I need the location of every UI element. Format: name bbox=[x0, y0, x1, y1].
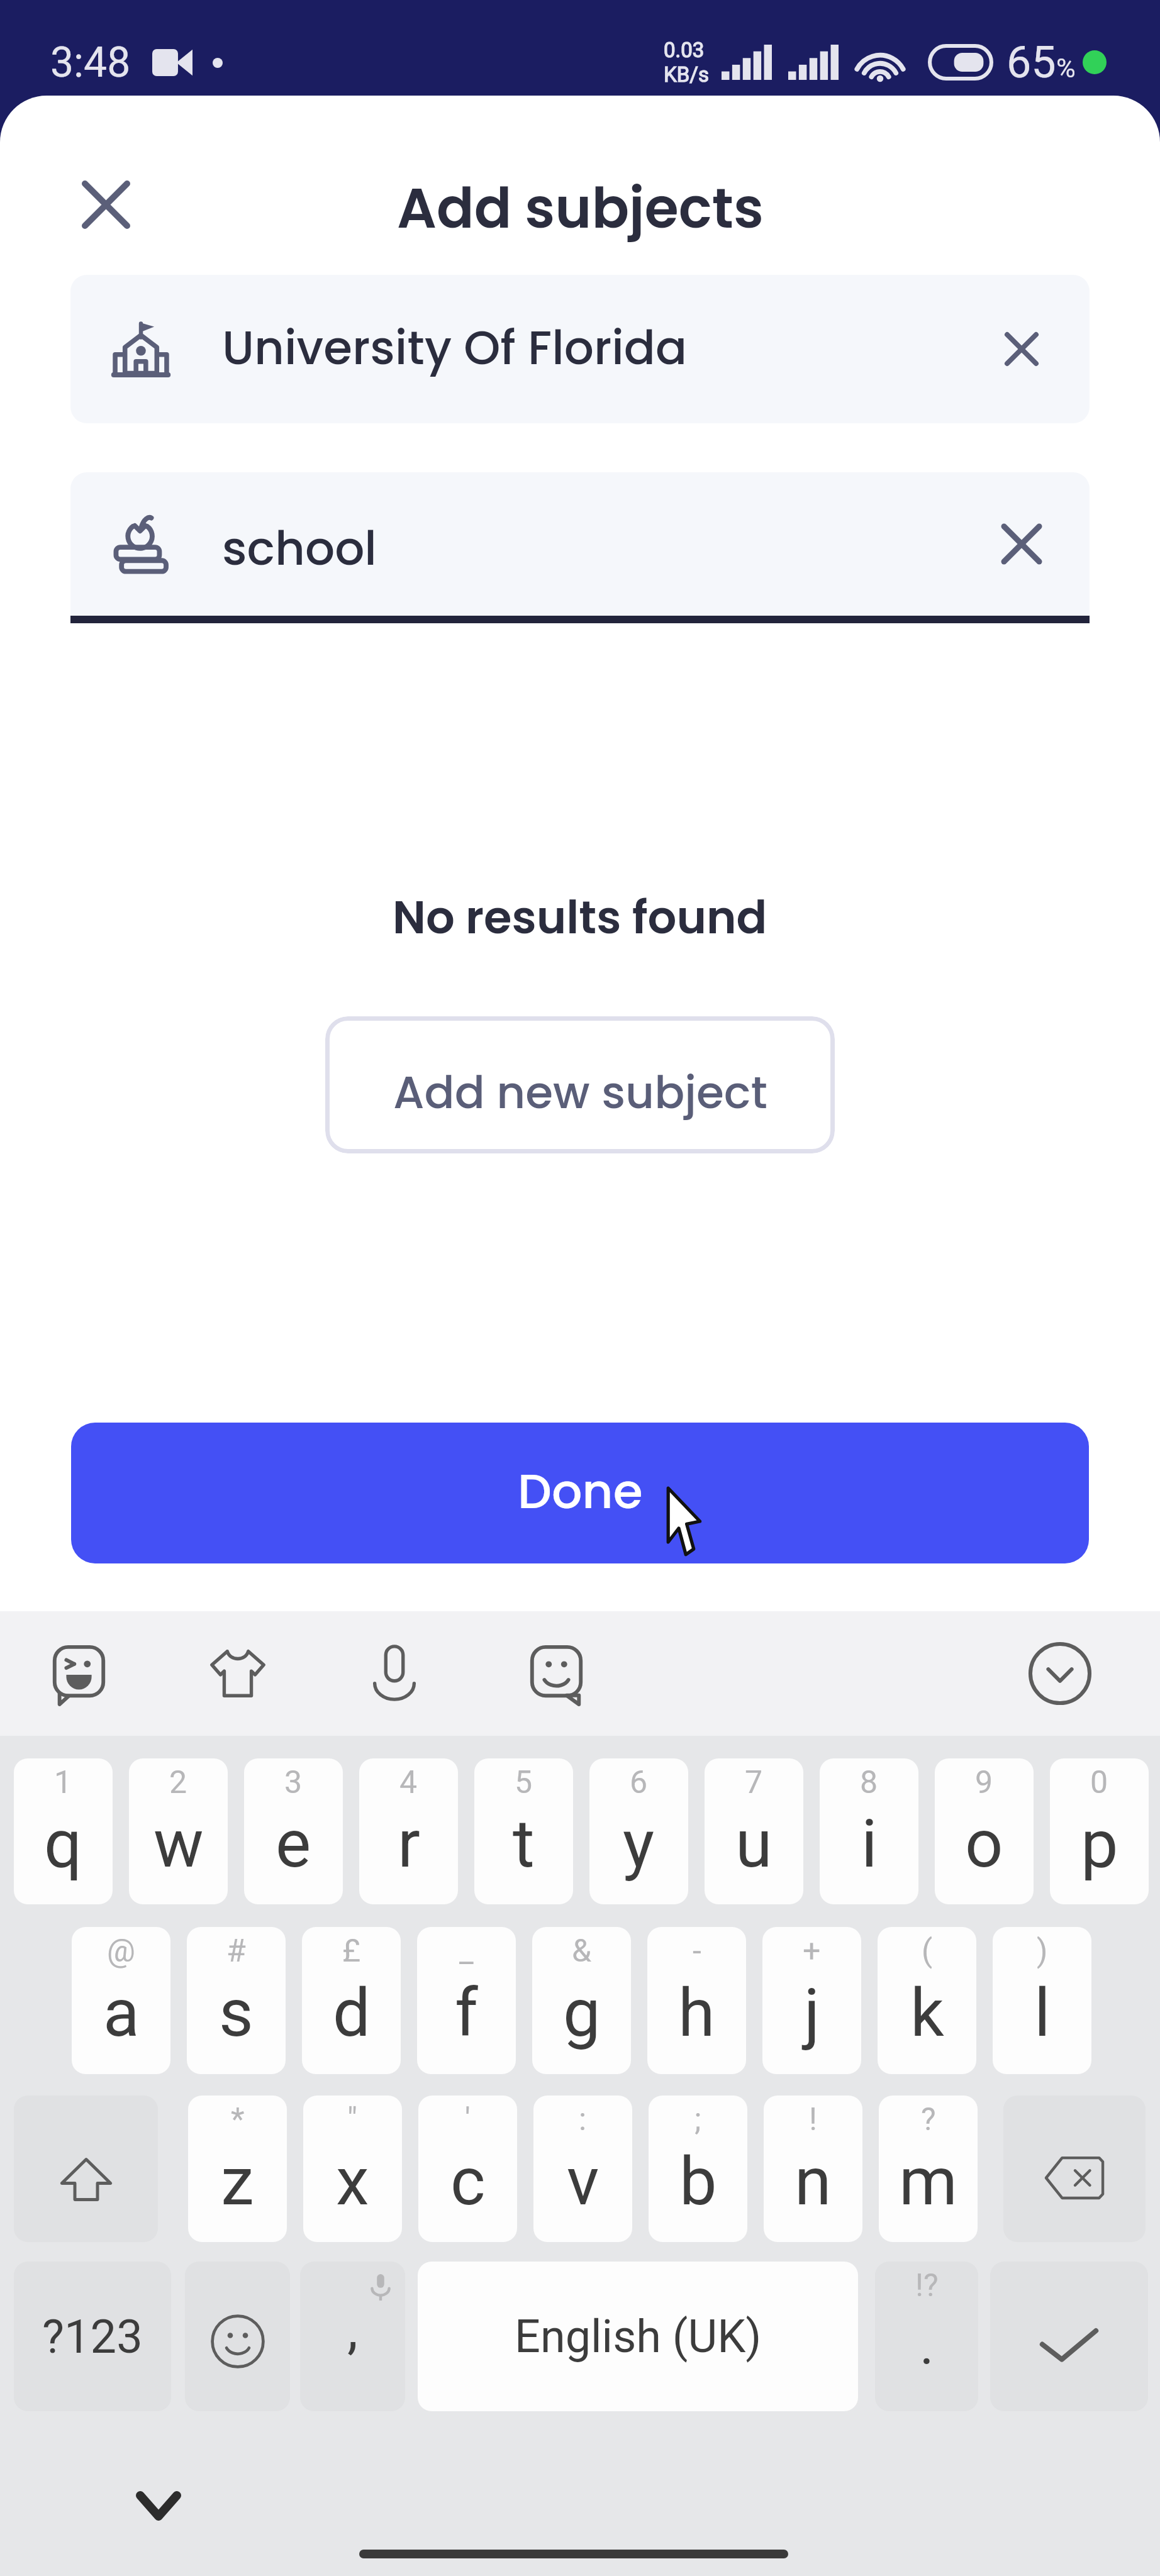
staticText: ; bbox=[694, 2101, 701, 2138]
staticText: @ bbox=[107, 1933, 135, 1970]
button[interactable]: Themes bbox=[203, 1639, 272, 1708]
button[interactable]: !? bbox=[875, 2262, 978, 2411]
staticText: o bbox=[965, 1805, 1003, 1883]
button[interactable]: @ bbox=[72, 1927, 170, 2074]
button[interactable]: school bbox=[70, 472, 1090, 616]
staticText: s bbox=[219, 1974, 254, 2052]
button[interactable]: 0 bbox=[1050, 1758, 1149, 1904]
button[interactable]: ?123 bbox=[14, 2262, 171, 2411]
staticText: x bbox=[336, 2143, 369, 2221]
button[interactable]: : bbox=[533, 2096, 632, 2242]
button[interactable]: Backspace bbox=[1003, 2096, 1146, 2242]
button[interactable]: 9 bbox=[935, 1758, 1034, 1904]
button[interactable]: 3 bbox=[244, 1758, 343, 1904]
button[interactable]: Emoji bbox=[522, 1639, 591, 1708]
staticText: ) bbox=[1037, 1933, 1048, 1970]
staticText: ! bbox=[809, 2101, 817, 2138]
staticText: !? bbox=[915, 2267, 939, 2304]
staticText: 3:48 bbox=[50, 38, 131, 87]
button[interactable]: Voice input bbox=[360, 1639, 429, 1708]
staticText: school bbox=[222, 516, 377, 581]
button[interactable]: * bbox=[188, 2096, 287, 2242]
button[interactable]: £ bbox=[302, 1927, 401, 2074]
button[interactable]: Remove subject bbox=[993, 320, 1051, 378]
button[interactable]: ! bbox=[764, 2096, 862, 2242]
staticText: z bbox=[221, 2143, 254, 2221]
staticText: ' bbox=[465, 2101, 471, 2138]
button[interactable]: 6 bbox=[589, 1758, 688, 1904]
staticText: b bbox=[679, 2143, 717, 2221]
staticText: Done bbox=[518, 1458, 643, 1524]
other: Enter bbox=[1039, 2318, 1100, 2355]
button[interactable]: ; bbox=[649, 2096, 747, 2242]
staticText: f bbox=[455, 1974, 478, 2052]
staticText: l bbox=[1034, 1974, 1051, 2052]
button[interactable]: & bbox=[532, 1927, 631, 2074]
staticText: ?123 bbox=[42, 2309, 143, 2364]
button[interactable]: Close bbox=[68, 167, 143, 242]
button[interactable]: 4 bbox=[359, 1758, 458, 1904]
button[interactable]: Enter bbox=[990, 2262, 1148, 2411]
staticText: p bbox=[1081, 1805, 1118, 1883]
staticText: 4 bbox=[399, 1764, 418, 1801]
staticText: ( bbox=[922, 1933, 933, 1970]
button[interactable]: Back bbox=[121, 2468, 196, 2543]
staticText: 3 bbox=[284, 1764, 303, 1801]
button[interactable]: 1 bbox=[14, 1758, 113, 1904]
staticText: " bbox=[347, 2101, 358, 2138]
button[interactable]: # bbox=[187, 1927, 286, 2074]
other: Backspace bbox=[1044, 2145, 1105, 2193]
button[interactable]: 7 bbox=[705, 1758, 803, 1904]
button[interactable]: Stickers bbox=[45, 1639, 114, 1708]
staticText: 6 bbox=[630, 1764, 648, 1801]
staticText: Add subjects bbox=[397, 170, 764, 247]
button[interactable]: , bbox=[300, 2262, 405, 2411]
staticText: h bbox=[678, 1974, 715, 2052]
button[interactable]: Emoji bbox=[185, 2262, 290, 2411]
staticText: £ bbox=[342, 1933, 361, 1970]
staticText: : bbox=[579, 2101, 587, 2138]
staticText: k bbox=[910, 1974, 944, 2052]
staticText: a bbox=[103, 1974, 140, 2052]
staticText: English (UK) bbox=[515, 2310, 762, 2363]
button[interactable]: Add new subject bbox=[325, 1016, 835, 1153]
button[interactable]: ( bbox=[878, 1927, 976, 2074]
staticText: , bbox=[347, 2297, 358, 2361]
staticText: 0.03 bbox=[664, 38, 705, 62]
staticText: Add new subject bbox=[393, 1061, 767, 1123]
staticText: 2 bbox=[169, 1764, 187, 1801]
staticText: & bbox=[572, 1933, 592, 1970]
staticText: m bbox=[899, 2143, 957, 2221]
staticText: 0 bbox=[1090, 1764, 1108, 1801]
staticText: 5 bbox=[515, 1764, 533, 1801]
staticText: + bbox=[803, 1933, 821, 1970]
staticText: 7 bbox=[745, 1764, 763, 1801]
button[interactable]: Hide toolbar bbox=[1025, 1639, 1095, 1708]
staticText: 9 bbox=[975, 1764, 993, 1801]
staticText: % bbox=[1056, 53, 1076, 84]
button[interactable]: " bbox=[303, 2096, 402, 2242]
staticText: KB/s bbox=[664, 62, 709, 87]
button[interactable]: 5 bbox=[474, 1758, 573, 1904]
button[interactable]: ) bbox=[993, 1927, 1091, 2074]
button[interactable]: Clear text bbox=[993, 515, 1051, 573]
button[interactable]: University Of Florida bbox=[70, 275, 1090, 423]
button[interactable]: ' bbox=[418, 2096, 517, 2242]
button[interactable]: 8 bbox=[820, 1758, 918, 1904]
staticText: r bbox=[398, 1805, 420, 1883]
staticText: u bbox=[735, 1805, 772, 1883]
staticText: # bbox=[226, 1933, 246, 1970]
staticText: v bbox=[567, 2143, 600, 2221]
staticText: g bbox=[563, 1974, 601, 2052]
staticText: j bbox=[804, 1974, 820, 2052]
button[interactable]: - bbox=[647, 1927, 746, 2074]
staticText: d bbox=[333, 1974, 371, 2052]
button[interactable]: _ bbox=[417, 1927, 516, 2074]
button[interactable]: Shift bbox=[14, 2096, 158, 2242]
button[interactable]: ? bbox=[879, 2096, 978, 2242]
staticText: q bbox=[44, 1805, 82, 1883]
button[interactable]: English (UK) bbox=[418, 2262, 858, 2411]
button[interactable]: Done bbox=[71, 1423, 1089, 1563]
button[interactable]: + bbox=[762, 1927, 861, 2074]
button[interactable]: 2 bbox=[129, 1758, 228, 1904]
